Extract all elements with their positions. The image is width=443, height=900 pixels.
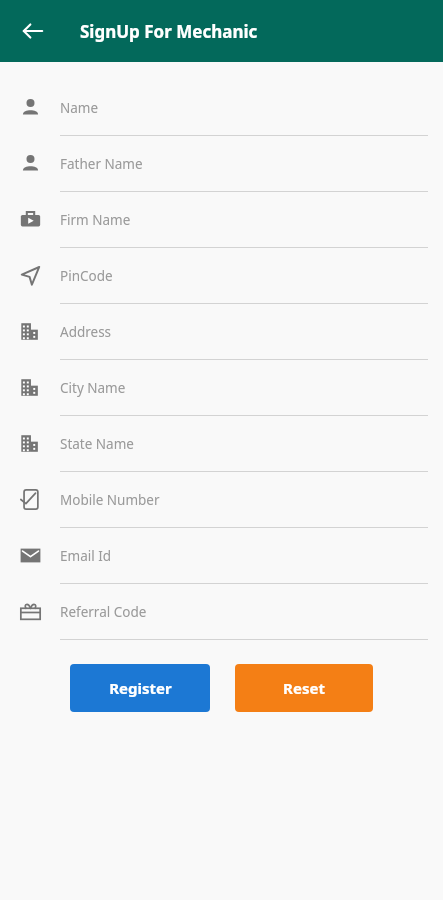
button[interactable]: Name (0, 80, 443, 136)
staticText: State Name (60, 435, 134, 453)
button[interactable]: Mobile Number (0, 472, 443, 528)
staticText: City Name (60, 379, 126, 397)
staticText: Email Id (60, 547, 112, 565)
button[interactable]: State Name (0, 416, 443, 472)
button[interactable]: Firm Name (0, 192, 443, 248)
staticText: Name (60, 99, 99, 117)
staticText: Address (60, 323, 112, 341)
staticText: Mobile Number (60, 491, 160, 509)
button[interactable]: City Name (0, 360, 443, 416)
button[interactable]: Referral Code (0, 584, 443, 640)
staticText: Firm Name (60, 211, 131, 229)
button[interactable]: Register (70, 664, 210, 712)
button[interactable]: Father Name (0, 136, 443, 192)
staticText: Reset (283, 678, 325, 698)
staticText: Referral Code (60, 603, 147, 621)
staticText: PinCode (60, 267, 113, 285)
button[interactable]: Address (0, 304, 443, 360)
button[interactable]: Back (12, 10, 54, 52)
staticText: Father Name (60, 155, 143, 173)
staticText: SignUp For Mechanic (80, 20, 258, 43)
button[interactable]: Reset (235, 664, 373, 712)
button[interactable]: Email Id (0, 528, 443, 584)
button[interactable]: PinCode (0, 248, 443, 304)
staticText: Register (109, 678, 172, 698)
